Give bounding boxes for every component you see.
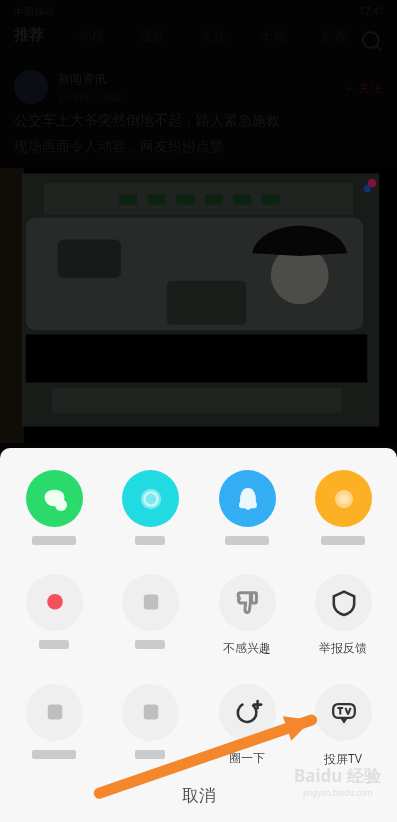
button[interactable] xyxy=(12,682,96,761)
button[interactable] xyxy=(108,682,192,761)
staticText: Baidu 经验 xyxy=(294,764,381,787)
staticText: jingyan.baidu.com xyxy=(303,787,373,798)
staticText: 公交车上大爷突然倒地不起，路人紧急施救 xyxy=(14,112,280,130)
staticText: 举报反馈 xyxy=(319,640,367,655)
staticText: 推荐 xyxy=(14,26,44,45)
staticText: 现场画面令人动容，网友纷纷点赞 xyxy=(14,138,224,156)
button[interactable] xyxy=(108,468,192,547)
staticText: 17:41 xyxy=(359,4,385,18)
button[interactable]: 取消 xyxy=(0,768,397,822)
button[interactable] xyxy=(205,468,289,547)
button[interactable] xyxy=(12,468,96,547)
button[interactable]: 推荐 xyxy=(10,22,48,49)
staticText: ＋ 关注 xyxy=(343,79,383,95)
staticText: 中国移动 xyxy=(14,5,54,18)
button[interactable]: 投屏TV xyxy=(301,682,385,768)
button[interactable]: 举报反馈 xyxy=(301,572,385,657)
staticText: 投屏TV xyxy=(324,750,362,766)
button[interactable] xyxy=(301,468,385,547)
button[interactable] xyxy=(12,572,96,651)
staticText: 不感兴趣 xyxy=(223,640,271,655)
button[interactable]: Search xyxy=(359,29,385,55)
button[interactable]: 不感兴趣 xyxy=(205,572,289,657)
staticText: 圈一下 xyxy=(229,750,265,765)
staticText: 取消 xyxy=(182,785,216,806)
button[interactable]: 圈一下 xyxy=(205,682,289,767)
button[interactable] xyxy=(108,572,192,651)
staticText: 新闻资讯 xyxy=(58,71,106,86)
staticText: 视频 xyxy=(139,28,165,44)
